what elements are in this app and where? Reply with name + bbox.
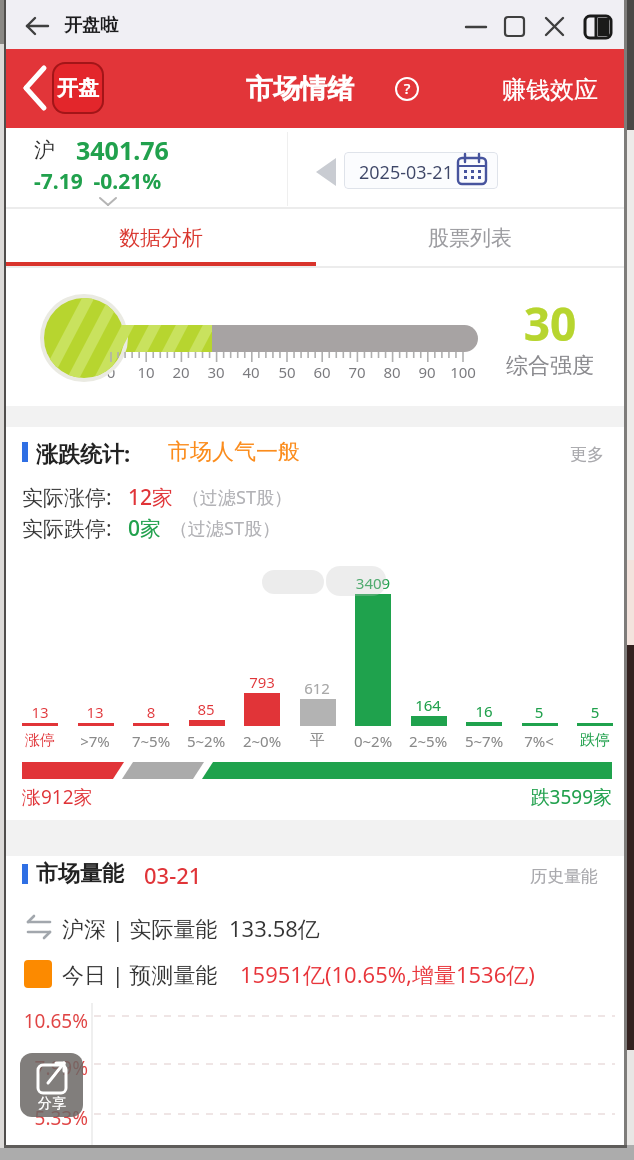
button[interactable]: 历史量能 <box>530 866 598 887</box>
staticText: 市场人气一般 <box>168 438 300 466</box>
staticText: 实际涨停: <box>22 483 112 512</box>
staticText: 开盘啦 <box>64 14 118 37</box>
staticText: ? <box>399 78 415 98</box>
button[interactable] <box>18 60 52 116</box>
staticText: 10 <box>124 362 168 382</box>
staticText: 60 <box>300 362 344 382</box>
staticText: （过滤ST股） <box>182 485 292 510</box>
button[interactable]: 数据分析 <box>6 209 316 266</box>
staticText: 20 <box>159 362 203 382</box>
staticText: 沪 <box>34 137 55 163</box>
button[interactable] <box>578 10 616 42</box>
staticText: 2025-03-21 <box>359 160 453 185</box>
staticText: 0 <box>89 362 133 382</box>
staticText: 7%< <box>511 731 567 751</box>
staticText: 5~2% <box>178 731 234 751</box>
button[interactable] <box>498 10 534 42</box>
button[interactable]: 股票列表 <box>316 209 624 266</box>
staticText: 5 <box>567 702 623 722</box>
staticText: 13 <box>12 702 68 722</box>
staticText: 30 <box>194 362 238 382</box>
staticText: 7~5% <box>123 731 179 751</box>
staticText: 跌停 <box>567 731 623 750</box>
staticText: 股票列表 <box>428 225 512 251</box>
staticText: 70 <box>335 362 379 382</box>
button[interactable]: 更多 <box>570 444 604 465</box>
staticText: 16 <box>456 701 512 721</box>
button[interactable]: 赚钱效应 <box>502 75 598 105</box>
staticText: 平 <box>289 731 345 750</box>
staticText: 综合强度 <box>492 352 608 380</box>
staticText: 15951亿(10.65%,增量1536亿) <box>240 959 535 989</box>
staticText: 164 <box>400 695 456 715</box>
staticText: 12家 <box>128 483 174 512</box>
staticText: 3401.76 <box>76 133 169 167</box>
staticText: 涨跌统计: <box>36 438 131 468</box>
staticText: 5.33% <box>14 1105 88 1131</box>
staticText: 2~0% <box>234 731 290 751</box>
staticText: 今日 | 预测量能 <box>62 959 218 989</box>
staticText: 30 <box>490 292 610 355</box>
staticText: -7.19 -0.21% <box>34 167 162 196</box>
staticText: 数据分析 <box>119 225 203 251</box>
button[interactable] <box>344 152 498 189</box>
staticText: 85 <box>178 699 234 719</box>
staticText: （过滤ST股） <box>170 516 280 541</box>
staticText: 分享 <box>38 1095 66 1113</box>
staticText: 8 <box>123 702 179 722</box>
staticText: 市场量能 <box>36 860 124 888</box>
staticText: 实际跌停: <box>22 514 112 543</box>
button[interactable] <box>310 152 342 190</box>
button[interactable] <box>538 10 574 42</box>
staticText: 80 <box>370 362 414 382</box>
staticText: 793 <box>234 672 290 692</box>
button[interactable] <box>458 10 494 42</box>
staticText: 跌3599家 <box>492 784 612 810</box>
staticText: 90 <box>405 362 449 382</box>
staticText: 5~7% <box>456 731 512 751</box>
button[interactable] <box>392 74 422 104</box>
staticText: 612 <box>289 678 345 698</box>
staticText: 涨912家 <box>22 784 93 810</box>
staticText: 沪深 | 实际量能 133.58亿 <box>62 913 320 943</box>
staticText: 50 <box>265 362 309 382</box>
staticText: 涨停 <box>12 731 68 750</box>
staticText: 0~2% <box>345 731 401 751</box>
staticText: 市场情绪 <box>180 72 420 106</box>
button[interactable] <box>20 8 56 44</box>
staticText: 5 <box>511 702 567 722</box>
staticText: 3409 <box>345 573 401 593</box>
staticText: 2~5% <box>400 731 456 751</box>
staticText: 开盘 <box>57 75 99 101</box>
staticText: 7.99% <box>14 1055 88 1081</box>
button[interactable]: 分享 <box>20 1053 83 1117</box>
staticText: 03-21 <box>144 860 202 890</box>
staticText: 40 <box>229 362 273 382</box>
staticText: 10.65% <box>14 1008 88 1034</box>
staticText: >7% <box>67 731 123 751</box>
staticText: 100 <box>441 362 485 382</box>
button[interactable] <box>6 49 624 128</box>
staticText: 0家 <box>128 514 162 543</box>
staticText: 13 <box>67 702 123 722</box>
